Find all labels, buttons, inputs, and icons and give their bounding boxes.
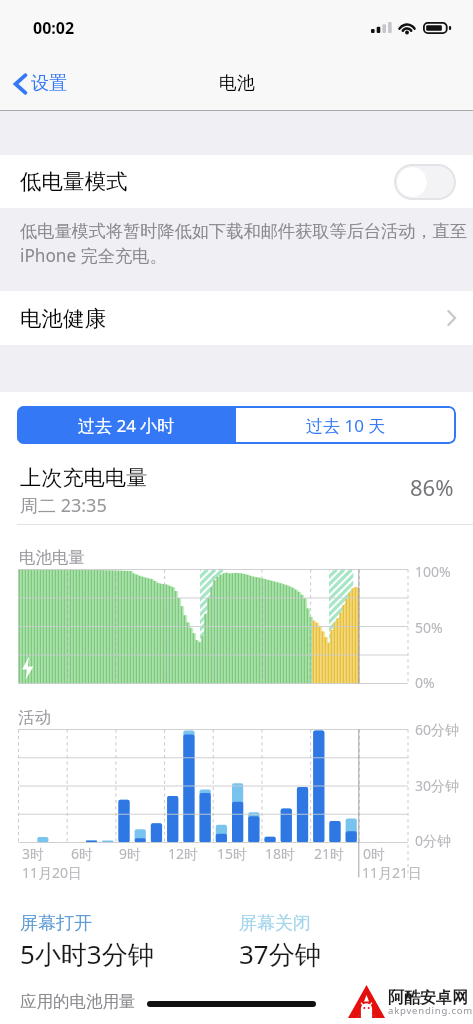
staticText: 上次充电电量 bbox=[20, 465, 148, 492]
staticText: 15时 bbox=[217, 844, 248, 863]
staticText: 屏幕打开 bbox=[20, 912, 92, 935]
staticText: 设置 bbox=[31, 72, 67, 95]
staticText: 11月20日 bbox=[22, 863, 83, 882]
staticText: 9时 bbox=[119, 844, 142, 863]
staticText: 0时 bbox=[363, 844, 386, 863]
staticText: 活动 bbox=[18, 707, 51, 728]
other: 电池健康 bbox=[447, 310, 456, 326]
staticText: 应用的电池用量 bbox=[20, 991, 136, 1012]
staticText: 0分钟 bbox=[415, 831, 452, 850]
staticText: 过去 24 小时 bbox=[78, 414, 175, 437]
staticText: 5小时3分钟 bbox=[20, 936, 154, 972]
staticText: 低电量模式将暂时降低如下载和邮件获取等后台活动，直至 iPhone 完全充电。 bbox=[20, 220, 467, 267]
button[interactable]: 过去 24 小时 bbox=[17, 406, 236, 444]
staticText: 低电量模式 bbox=[20, 168, 128, 195]
staticText: 30分钟 bbox=[415, 776, 460, 795]
staticText: 6时 bbox=[71, 844, 94, 863]
button[interactable]: 设置 bbox=[10, 66, 71, 101]
button[interactable]: 低电量模式 bbox=[0, 155, 473, 208]
staticText: 电池健康 bbox=[20, 305, 106, 332]
staticText: 电池电量 bbox=[19, 547, 85, 568]
staticText: 0% bbox=[415, 673, 435, 692]
staticText: 86% bbox=[410, 472, 454, 502]
staticText: 50% bbox=[415, 618, 443, 637]
staticText: 18时 bbox=[265, 844, 296, 863]
button[interactable]: 低电量模式开关 bbox=[394, 164, 456, 200]
button[interactable]: 电池健康 bbox=[0, 291, 473, 345]
staticText: 100% bbox=[415, 562, 451, 581]
staticText: 过去 10 天 bbox=[306, 414, 386, 437]
staticText: 12时 bbox=[168, 844, 199, 863]
staticText: 11月21日 bbox=[362, 863, 423, 882]
staticText: 00:02 bbox=[33, 17, 75, 39]
staticText: 37分钟 bbox=[239, 936, 321, 972]
staticText: 21时 bbox=[314, 844, 345, 863]
staticText: 周二 23:35 bbox=[20, 493, 107, 518]
button[interactable]: 过去 10 天 bbox=[236, 406, 456, 444]
staticText: 电池 bbox=[219, 72, 255, 95]
staticText: akpvending.com bbox=[388, 1004, 473, 1017]
staticText: 60分钟 bbox=[415, 720, 460, 739]
staticText: 3时 bbox=[22, 844, 45, 863]
staticText: 阿酷安卓网 bbox=[388, 988, 468, 1008]
staticText: 屏幕关闭 bbox=[239, 912, 311, 935]
